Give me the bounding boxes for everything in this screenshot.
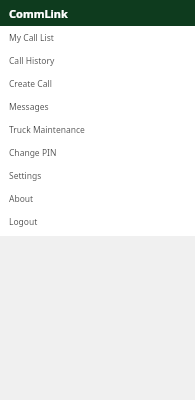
button[interactable]: My Call List: [0, 26, 195, 49]
button[interactable]: Settings: [0, 164, 195, 187]
staticText: Settings: [9, 170, 42, 182]
staticText: CommLink: [9, 6, 68, 21]
staticText: My Call List: [9, 32, 54, 44]
button[interactable]: Call History: [0, 49, 195, 72]
staticText: Messages: [9, 101, 49, 113]
staticText: Call History: [9, 55, 55, 67]
button[interactable]: CommLink: [0, 0, 195, 26]
button[interactable]: Change PIN: [0, 141, 195, 164]
button[interactable]: Truck Maintenance: [0, 118, 195, 141]
button[interactable]: Create Call: [0, 72, 195, 95]
staticText: Truck Maintenance: [9, 124, 85, 136]
button[interactable]: About: [0, 187, 195, 210]
staticText: Change PIN: [9, 147, 57, 159]
staticText: Create Call: [9, 78, 52, 90]
button[interactable]: Logout: [0, 210, 195, 233]
button[interactable]: Messages: [0, 95, 195, 118]
staticText: Logout: [9, 216, 38, 228]
staticText: About: [9, 193, 34, 205]
